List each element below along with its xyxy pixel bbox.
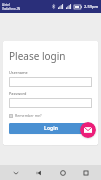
staticText: Username <box>9 70 28 75</box>
staticText: 2.59pm <box>84 4 99 9</box>
staticText: Password <box>9 91 27 96</box>
button[interactable] <box>9 98 92 108</box>
button[interactable]: Login <box>9 123 92 134</box>
button[interactable]: Hide keyboard <box>8 165 23 180</box>
button[interactable]: Back <box>31 165 46 180</box>
button[interactable]: Remember me? <box>9 112 42 119</box>
button[interactable] <box>9 77 92 87</box>
button[interactable]: Compose message <box>80 122 96 138</box>
staticText: Login <box>44 125 58 132</box>
staticText: Please login <box>9 49 66 63</box>
staticText: Airtel <box>2 3 10 7</box>
button[interactable]: Home <box>55 165 70 180</box>
staticText: Remember me? <box>15 113 42 118</box>
staticText: Vodafone-IN <box>2 7 21 11</box>
button[interactable]: Recent apps <box>78 165 93 180</box>
